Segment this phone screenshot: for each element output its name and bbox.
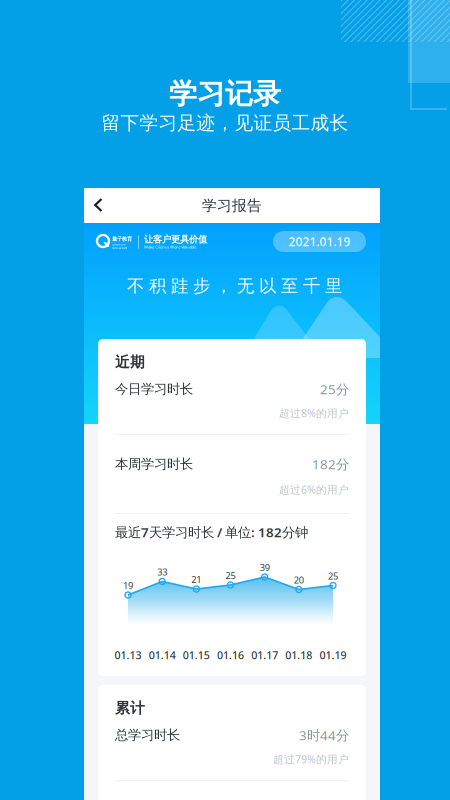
staticText: EDUCATION	[112, 246, 127, 250]
staticText: QUANTUM	[112, 243, 125, 246]
staticText: 累计	[115, 699, 145, 717]
staticText: 量子教育	[112, 236, 132, 242]
staticText: 20	[294, 574, 304, 586]
staticText: 不积跬步，无以至千里	[127, 275, 342, 297]
staticText: 33	[157, 566, 167, 578]
staticText: 最近7天学习时长 / 单位: 182分钟	[115, 523, 308, 541]
staticText: 01.18	[285, 648, 312, 662]
staticText: 本周学习时长	[115, 456, 193, 472]
staticText: 39	[260, 561, 270, 574]
staticText: 超过6%的用户	[279, 482, 349, 497]
staticText: 01.19	[319, 648, 346, 662]
staticText: 学习记录	[169, 77, 281, 111]
staticText: 182分	[312, 455, 349, 473]
staticText: 01.14	[149, 648, 176, 662]
staticText: 2021.01.19	[288, 233, 350, 249]
staticText: 25	[225, 569, 235, 582]
button[interactable]: 返回	[84, 188, 117, 223]
staticText: 21	[191, 573, 201, 586]
staticText: 19	[123, 579, 133, 592]
staticText: 近期	[115, 353, 145, 371]
staticText: 01.16	[217, 648, 244, 662]
staticText: 25	[328, 570, 338, 582]
staticText: 超过79%的用户	[273, 752, 349, 766]
staticText: 25分	[320, 380, 349, 398]
staticText: 01.13	[114, 648, 141, 662]
staticText: 3时44分	[299, 726, 349, 744]
staticText: 留下学习足迹，见证员工成长	[101, 111, 348, 134]
staticText: 学习报告	[202, 196, 262, 214]
staticText: 01.15	[183, 648, 210, 662]
staticText: 超过8%的用户	[279, 406, 349, 420]
staticText: 01.17	[251, 648, 278, 662]
staticText: Make Clients More Valuable	[144, 244, 196, 250]
staticText: 今日学习时长	[115, 381, 193, 397]
staticText: 总学习时长	[115, 727, 180, 743]
staticText: 让客户更具价值	[144, 234, 207, 245]
